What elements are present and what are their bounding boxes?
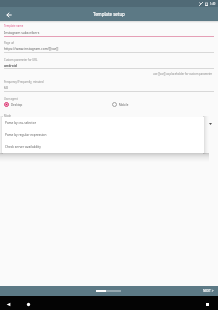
staticText: Page url — [4, 41, 15, 45]
button[interactable]: Home — [26, 302, 31, 307]
staticText: Template name — [4, 24, 24, 28]
staticText: Desktop — [11, 103, 23, 107]
staticText: Parse by regular expression — [5, 133, 47, 137]
staticText: Parse by css-selector — [5, 121, 37, 125]
staticText: 60 — [4, 85, 8, 90]
staticText: User agent — [4, 97, 18, 101]
staticText: Frequency (Frequently, minutes) — [4, 80, 44, 84]
staticText: Custom parameter for URL — [4, 58, 38, 62]
button[interactable]: Mobile — [112, 102, 129, 107]
staticText: Mode — [4, 114, 12, 118]
button[interactable]: Parse by css-selector — [2, 117, 204, 129]
staticText: https://www.instagram.com/[[var]] — [4, 46, 59, 51]
staticText: Check server availability — [5, 145, 41, 149]
staticText: 1:40 — [210, 2, 216, 6]
button[interactable]: Desktop — [4, 102, 112, 107]
staticText: use [[var]] as placeholder for custom pa… — [153, 72, 213, 76]
staticText: Instagram subscribers — [4, 30, 40, 35]
staticText: android — [4, 63, 17, 68]
button[interactable]: Check server availability — [2, 141, 204, 153]
button[interactable]: Back — [6, 302, 11, 307]
button[interactable]: Parse by regular expression — [2, 129, 204, 141]
staticText: Template setup — [93, 11, 125, 17]
button[interactable]: Open mode dropdown — [207, 120, 214, 127]
staticText: Mobile — [119, 103, 129, 107]
button[interactable]: NEXT > — [203, 289, 218, 293]
button[interactable]: Back — [3, 9, 14, 20]
